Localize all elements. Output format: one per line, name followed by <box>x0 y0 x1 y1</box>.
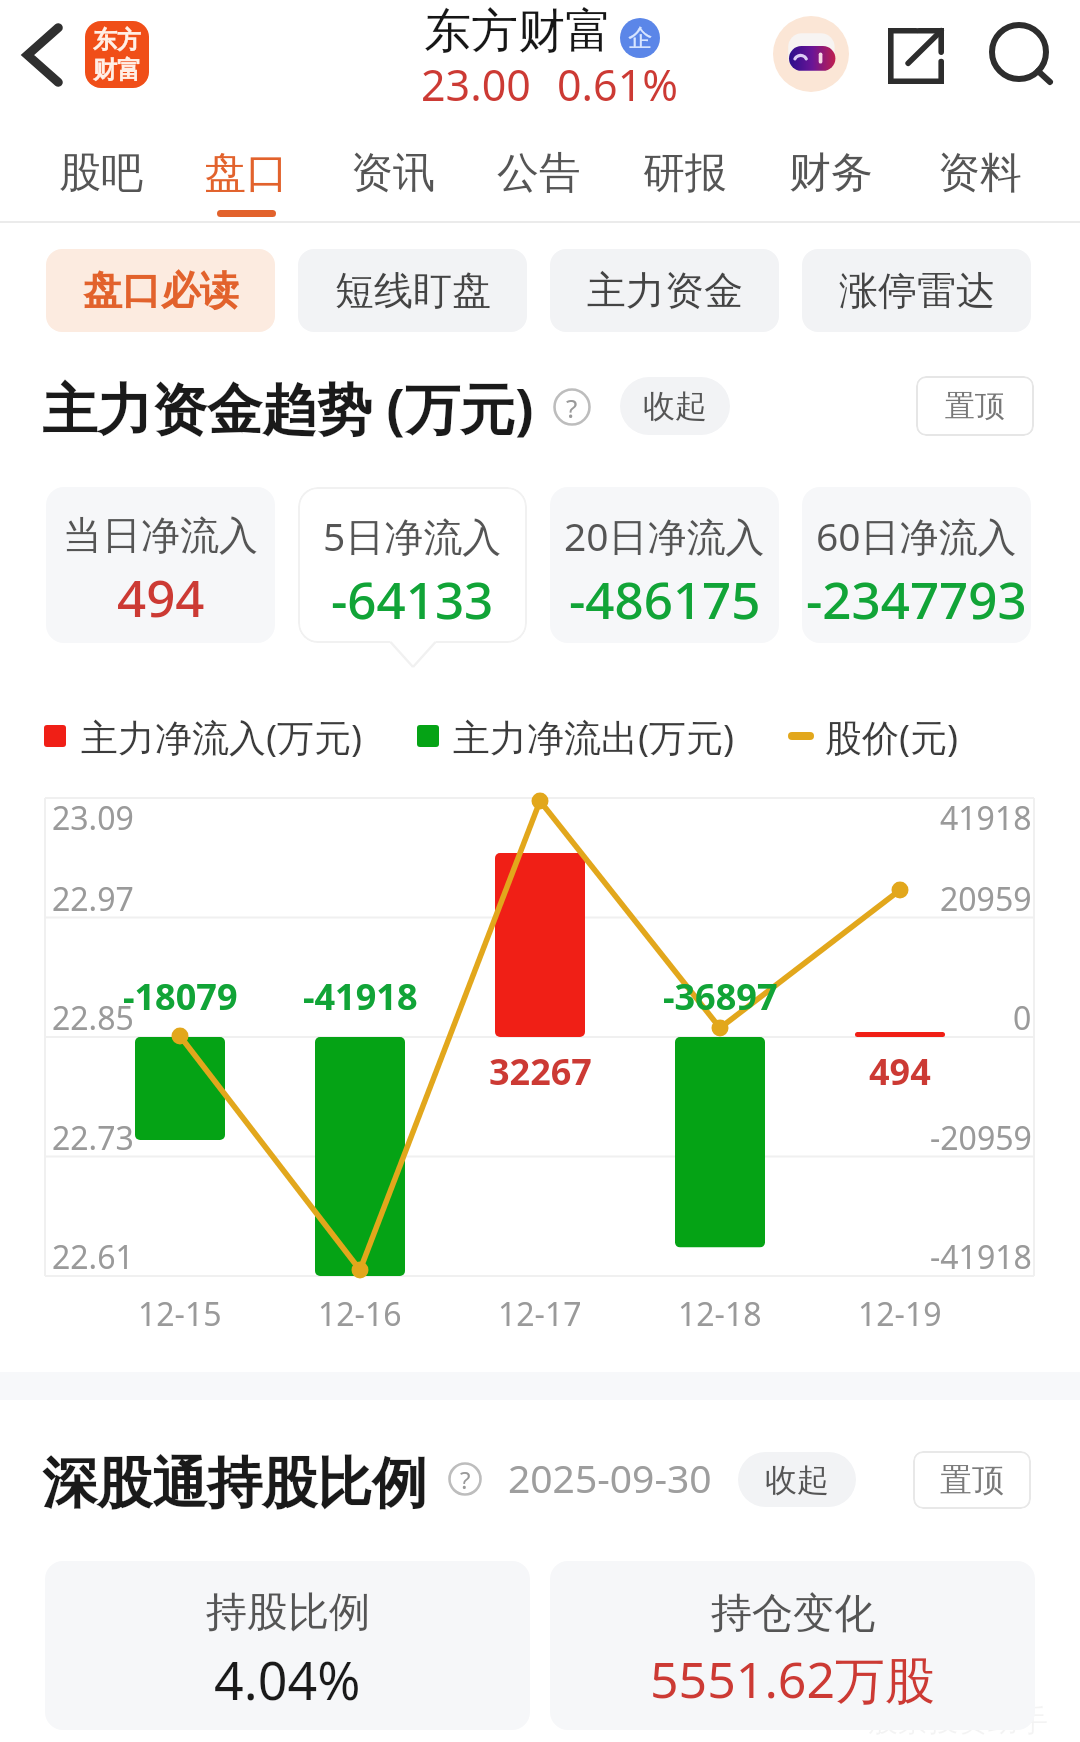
button[interactable]: 当日净流入 <box>46 487 275 643</box>
staticText: 22.73 <box>52 1116 134 1160</box>
staticText: 主力净流入(万元) <box>81 711 363 762</box>
button[interactable]: 收起 <box>620 377 730 435</box>
staticText: 财务 <box>789 147 873 200</box>
staticText: 5551.62万股 <box>650 1645 935 1713</box>
button[interactable]: 主力资金 <box>550 249 779 332</box>
staticText: 涨停雷达 <box>839 266 995 315</box>
button[interactable]: AI assistant <box>771 14 851 94</box>
staticText: 置顶 <box>940 1460 1004 1500</box>
button[interactable]: 5日净流入 <box>298 487 527 643</box>
staticText: 22.97 <box>52 877 134 921</box>
staticText: 4.04% <box>214 1644 361 1715</box>
staticText: 短线盯盘 <box>335 266 491 315</box>
button[interactable]: Share <box>882 22 950 90</box>
staticText: 5日净流入 <box>323 509 502 562</box>
button[interactable]: 股吧 <box>39 120 163 223</box>
staticText: 23.00 <box>421 55 531 114</box>
staticText: 0 <box>1013 996 1032 1040</box>
staticText: 盘口 <box>204 147 288 200</box>
staticText: 494 <box>869 1047 931 1096</box>
staticText: 主力资金趋势 (万元) <box>42 370 534 445</box>
button[interactable]: Back <box>10 20 80 90</box>
staticText: ? <box>566 390 578 425</box>
staticText: -486175 <box>569 564 761 633</box>
staticText: 持股比例 <box>206 1587 370 1639</box>
staticText: 东方 <box>93 25 141 55</box>
staticText: 资料 <box>938 147 1022 200</box>
button[interactable]: 盘口必读 <box>46 249 275 332</box>
staticText: 盘口必读 <box>83 266 239 315</box>
staticText: 41918 <box>940 796 1032 840</box>
staticText: -18079 <box>123 972 238 1021</box>
staticText: 企 <box>628 23 652 53</box>
staticText: 研报 <box>643 147 727 200</box>
staticText: 22.61 <box>52 1235 134 1279</box>
staticText: 当日净流入 <box>63 511 258 560</box>
staticText: 23.09 <box>52 796 134 840</box>
staticText: -2347793 <box>806 564 1027 633</box>
staticText: 60日净流入 <box>816 509 1017 562</box>
staticText: 12-18 <box>678 1292 762 1336</box>
staticText: 12-17 <box>498 1292 582 1336</box>
staticText: -20959 <box>930 1116 1032 1160</box>
staticText: 20959 <box>940 877 1032 921</box>
button[interactable]: 置顶 <box>916 376 1034 436</box>
button[interactable]: 收起 <box>738 1452 856 1507</box>
staticText: 收起 <box>643 386 707 426</box>
button[interactable]: Search <box>985 18 1053 86</box>
button[interactable]: 资料 <box>918 120 1042 223</box>
button[interactable]: Help <box>550 385 594 429</box>
button[interactable]: 60日净流入 <box>802 487 1031 643</box>
staticText: 2025-09-30 <box>508 1451 712 1504</box>
button[interactable]: 20日净流入 <box>550 487 779 643</box>
staticText: 持仓变化 <box>711 1588 875 1640</box>
staticText: -64133 <box>331 564 494 633</box>
button[interactable]: 持仓变化 <box>550 1561 1035 1730</box>
staticText: 494 <box>117 562 205 631</box>
staticText: 12-16 <box>318 1292 402 1336</box>
staticText: 股票投资助手 <box>868 1702 1048 1740</box>
button[interactable]: 短线盯盘 <box>298 249 527 332</box>
staticText: 12-15 <box>138 1292 222 1336</box>
staticText: 股吧 <box>59 147 143 200</box>
staticText: 资讯 <box>351 147 435 200</box>
staticText: -36897 <box>663 972 778 1021</box>
button[interactable]: 公告 <box>477 120 601 223</box>
staticText: 股价(元) <box>825 711 959 762</box>
staticText: -41918 <box>303 972 418 1021</box>
staticText: 收起 <box>765 1460 829 1500</box>
button[interactable]: 盘口 <box>184 120 308 223</box>
staticText: 深股通持股比例 <box>42 1449 427 1518</box>
staticText: 主力资金 <box>587 266 743 315</box>
staticText: ? <box>460 1463 471 1496</box>
staticText: 20日净流入 <box>564 509 765 562</box>
staticText: -41918 <box>930 1235 1032 1279</box>
staticText: 东方财富 <box>424 2 612 61</box>
button[interactable]: 置顶 <box>913 1451 1031 1509</box>
button[interactable]: 研报 <box>623 120 747 223</box>
staticText: 置顶 <box>945 387 1005 425</box>
staticText: 财富 <box>93 55 141 85</box>
staticText: 公告 <box>497 147 581 200</box>
staticText: 22.85 <box>52 996 134 1040</box>
button[interactable]: 资讯 <box>331 120 455 223</box>
staticText: 32267 <box>489 1047 592 1096</box>
button[interactable]: Help <box>443 1457 487 1501</box>
staticText: 0.61% <box>557 55 679 114</box>
staticText: 12-19 <box>858 1292 942 1336</box>
button[interactable]: 涨停雷达 <box>802 249 1031 332</box>
button[interactable]: East Money logo <box>85 21 149 88</box>
button[interactable]: 持股比例 <box>45 1561 530 1730</box>
button[interactable]: 财务 <box>769 120 893 223</box>
staticText: 主力净流出(万元) <box>453 711 735 762</box>
